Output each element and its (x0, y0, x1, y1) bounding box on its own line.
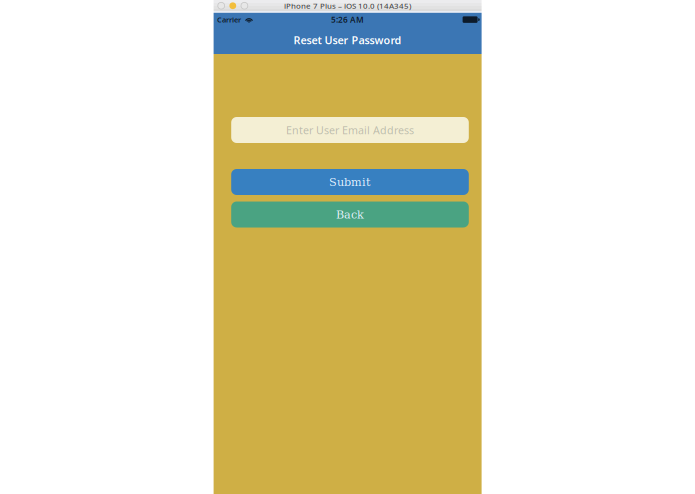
staticText: Carrier (217, 15, 241, 25)
staticText: 5:26 AM (331, 14, 364, 25)
staticText: Back (336, 208, 364, 221)
staticText: Enter User Email Address (286, 123, 414, 137)
staticText: Reset User Password (294, 33, 402, 47)
staticText: Submit (329, 175, 371, 188)
staticText: iPhone 7 Plus – iOS 10.0 (14A345) (284, 0, 411, 11)
button[interactable]: Back (231, 201, 469, 227)
button[interactable]: Submit (231, 169, 469, 195)
